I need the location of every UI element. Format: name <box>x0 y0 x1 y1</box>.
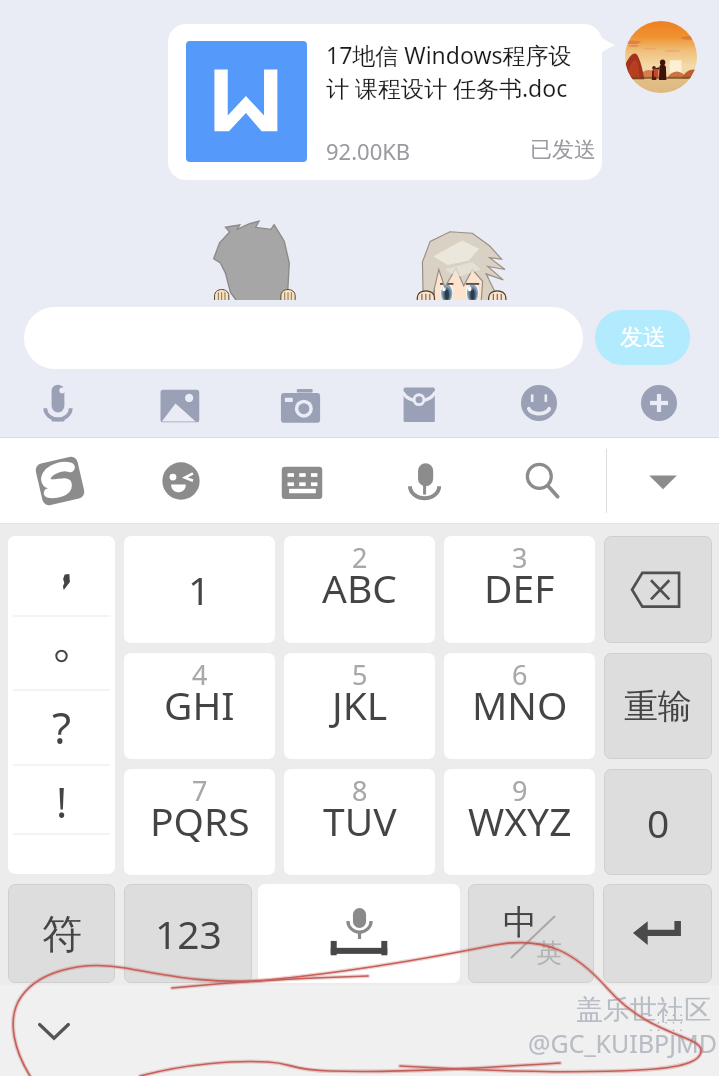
button[interactable]: 17地信 Windows程序设 计 课程设计 任务书.doc <box>168 24 602 180</box>
button[interactable]: Red packet <box>389 373 449 433</box>
staticText: 92.00KB <box>326 136 411 166</box>
button[interactable]: More <box>629 373 689 433</box>
button[interactable]: 9 <box>444 769 595 875</box>
staticText: WXYZ <box>468 794 572 847</box>
button[interactable]: Enter <box>603 884 712 983</box>
staticText: 英 <box>536 937 562 970</box>
staticText: 17地信 Windows程序设 计 课程设计 任务书.doc <box>326 39 572 104</box>
button[interactable]: Backspace <box>604 536 712 643</box>
staticText: 3 <box>512 539 528 576</box>
button[interactable]: 0 <box>604 769 712 875</box>
button[interactable]: 6 <box>444 653 595 759</box>
button[interactable]: Emoji <box>509 373 569 433</box>
staticText: 8 <box>352 772 368 809</box>
staticText: 已发送 <box>530 136 596 164</box>
staticText: 符 <box>42 909 82 959</box>
button[interactable]: 5 <box>284 653 435 759</box>
button[interactable]: Keyboard layout <box>272 451 332 511</box>
button[interactable] <box>24 307 583 369</box>
staticText: ABC <box>322 561 397 614</box>
button[interactable]: Space <box>258 884 460 983</box>
staticText: DEF <box>484 561 555 614</box>
button[interactable]: Photo <box>149 373 209 433</box>
button[interactable]: ? <box>8 536 115 874</box>
staticText: MNO <box>472 678 568 731</box>
staticText: 盖乐世社区 <box>576 993 711 1027</box>
staticText: TUV <box>323 794 397 847</box>
staticText: ? <box>52 697 72 757</box>
button[interactable]: Collapse <box>633 451 693 511</box>
button[interactable]: Avatar <box>625 21 697 93</box>
staticText: 中 <box>503 901 537 944</box>
staticText: 1 <box>188 563 211 616</box>
staticText: 发送 <box>620 323 666 352</box>
staticText: PQRS <box>150 794 250 847</box>
staticText: 0 <box>647 796 670 849</box>
staticText: 4 <box>192 656 208 693</box>
button[interactable]: 1 <box>124 536 275 643</box>
staticText: 7 <box>192 772 208 809</box>
button[interactable]: Voice input <box>394 451 454 511</box>
button[interactable]: 发送 <box>595 310 690 365</box>
button[interactable]: 7 <box>124 769 275 875</box>
button[interactable]: 符 <box>8 884 115 983</box>
staticText: 123 <box>155 907 222 960</box>
staticText: ! <box>56 773 68 830</box>
button[interactable]: Search <box>513 451 573 511</box>
button[interactable]: Sogou <box>30 451 90 511</box>
button[interactable]: 3 <box>444 536 595 643</box>
staticText: 6 <box>512 656 528 693</box>
staticText: 重输 <box>624 685 692 728</box>
staticText: GHI <box>164 678 235 731</box>
staticText: JKL <box>332 678 388 731</box>
button[interactable]: 123 <box>124 884 252 983</box>
button[interactable]: Camera <box>269 373 329 433</box>
button[interactable]: 2 <box>284 536 435 643</box>
button[interactable]: Emoji <box>151 451 211 511</box>
staticText: 2 <box>352 539 368 576</box>
button[interactable]: Chinese English toggle <box>468 884 594 983</box>
staticText: @GC_KUIBPJMD <box>528 1026 717 1060</box>
staticText: 5 <box>352 656 368 693</box>
button[interactable]: Voice message <box>28 373 88 433</box>
button[interactable]: 8 <box>284 769 435 875</box>
button[interactable]: 4 <box>124 653 275 759</box>
button[interactable]: Collapse keyboard <box>28 1005 80 1057</box>
staticText: 9 <box>512 772 528 809</box>
button[interactable]: 重输 <box>604 653 712 759</box>
